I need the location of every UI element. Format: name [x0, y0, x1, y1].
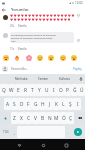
button[interactable]: A [4, 98, 11, 110]
staticText: K [55, 101, 58, 108]
staticText: Merhaba [15, 77, 28, 81]
button[interactable]: Shift [0, 112, 11, 124]
button[interactable]: Voice input [76, 74, 85, 83]
button[interactable]: Kullanıcı [54, 74, 76, 83]
staticText: Tamam [38, 77, 49, 81]
button[interactable]: R [22, 84, 29, 96]
staticText: cüzi [11, 39, 16, 42]
staticText: N [48, 115, 52, 122]
staticText: D [20, 101, 24, 108]
button[interactable]: Ü [78, 84, 85, 96]
button[interactable]: K [53, 98, 60, 110]
staticText: P [66, 87, 69, 94]
button[interactable]: W [8, 84, 15, 96]
button[interactable]: S [11, 98, 18, 110]
button[interactable]: J [46, 98, 53, 110]
button[interactable]: Backspace [74, 112, 85, 124]
staticText: Ğ [73, 87, 77, 94]
button[interactable]: D [18, 98, 25, 110]
staticText: S [13, 101, 16, 108]
staticText: V [34, 115, 37, 122]
staticText: Q [2, 87, 6, 94]
button[interactable]: P [64, 84, 71, 96]
staticText: W [9, 87, 14, 94]
button[interactable]: V [32, 112, 39, 124]
staticText: G [34, 101, 38, 108]
staticText: X [20, 115, 23, 122]
staticText: acarbilen@onushoo etkinlik ve paylaşım [11, 33, 56, 36]
staticText: etkinlik ve paylaşım sitesi!onushooEE [11, 36, 53, 39]
staticText: Paylaş [73, 67, 82, 71]
staticText: O [59, 87, 63, 94]
button[interactable]: Ğ [71, 84, 78, 96]
button[interactable]: C [25, 112, 32, 124]
button[interactable]: React [71, 55, 77, 61]
staticText: 20s [10, 24, 15, 28]
button[interactable]: React love [3, 55, 9, 61]
button[interactable]: O [57, 84, 64, 96]
button[interactable]: Send [74, 128, 82, 136]
button[interactable]: M [53, 112, 60, 124]
button[interactable]: Yanıtla [18, 24, 27, 28]
staticText: H [41, 101, 45, 108]
button[interactable]: Ç [67, 112, 74, 124]
button[interactable]: Back [0, 6, 8, 13]
button[interactable]: B [39, 112, 46, 124]
staticText: Ç [69, 115, 73, 122]
staticText: E [17, 87, 20, 94]
button[interactable]: G [32, 98, 39, 110]
button[interactable]: Y [36, 84, 43, 96]
button[interactable]: Like [77, 14, 80, 17]
staticText: F [27, 101, 30, 108]
button[interactable]: Tamam [32, 74, 54, 83]
button[interactable]: Comma [12, 125, 17, 139]
button[interactable]: Yorum ekle... [11, 64, 72, 74]
staticText: C [27, 115, 31, 122]
button[interactable]: U [43, 84, 50, 96]
staticText: 15s [10, 47, 15, 51]
staticText: Ö [62, 115, 66, 122]
button[interactable]: Merhaba [11, 74, 32, 83]
button[interactable]: Q [0, 84, 8, 96]
button[interactable]: L [60, 98, 67, 110]
button[interactable]: React [37, 55, 43, 61]
staticText: 12:02 [75, 1, 83, 5]
staticText: L [62, 101, 65, 108]
button[interactable]: Ö [60, 112, 67, 124]
staticText: Yanıtla [18, 24, 27, 28]
button[interactable]: React flower [26, 55, 32, 61]
button[interactable]: T [29, 84, 36, 96]
staticText: . [67, 130, 68, 135]
staticText: T [31, 87, 34, 94]
button[interactable]: React [60, 55, 66, 61]
staticText: , [14, 130, 15, 135]
button[interactable]: Yanıtla [18, 47, 27, 51]
button[interactable]: H [39, 98, 46, 110]
button[interactable]: I [50, 84, 57, 96]
button[interactable]: E [15, 84, 22, 96]
button[interactable]: React fire [14, 55, 20, 61]
button[interactable]: Paylaş [72, 67, 83, 71]
button[interactable]: F [25, 98, 32, 110]
button[interactable]: ?123 [0, 125, 12, 139]
button[interactable]: Like comment [77, 39, 80, 42]
staticText: Yanıtla [18, 47, 27, 51]
staticText: I [53, 87, 55, 94]
button[interactable]: Back [14, 140, 24, 150]
button[interactable]: N [46, 112, 53, 124]
button[interactable]: Recent apps [61, 140, 71, 150]
button[interactable]: X [18, 112, 25, 124]
staticText: A [6, 101, 10, 108]
staticText: Ş [69, 101, 72, 108]
staticText: Kullanıcı [59, 77, 71, 81]
button[interactable]: Ş [67, 98, 74, 110]
staticText: I [77, 101, 79, 108]
staticText: Y [38, 87, 41, 94]
button[interactable]: I [74, 98, 81, 110]
button[interactable]: React [48, 55, 54, 61]
button[interactable]: Home [38, 140, 48, 150]
button[interactable]: Z [11, 112, 18, 124]
staticText: ?123 [3, 130, 9, 134]
